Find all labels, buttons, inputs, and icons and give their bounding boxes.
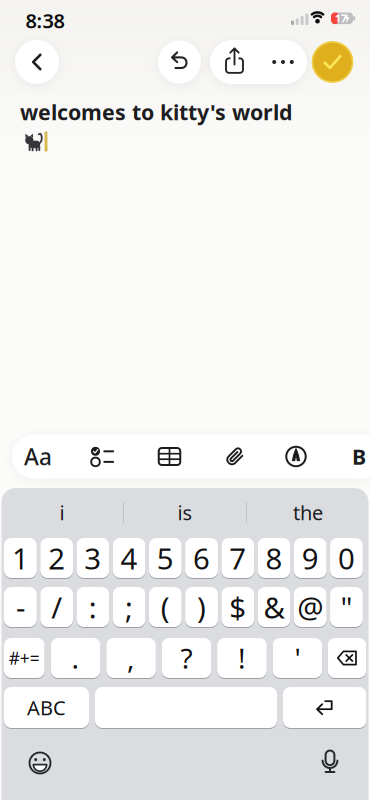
button[interactable]: Done [312,41,353,82]
staticText: ! [238,639,246,677]
staticText: 7 [229,538,246,577]
button[interactable]: 5 [149,538,182,578]
button[interactable]: ) [185,587,218,627]
staticText: 1 [12,538,29,577]
staticText: ABC [27,694,66,721]
button[interactable]: #+= [4,638,45,678]
staticText: 0 [338,538,355,577]
staticText: ) [197,587,206,626]
button[interactable]: Attach file [213,434,257,478]
button[interactable]: Delete [328,638,366,678]
button[interactable]: - [4,587,37,627]
staticText: " [340,587,352,626]
staticText: welcomes to kitty's world [20,98,292,126]
staticText: ? [180,639,192,677]
staticText: is [177,499,192,526]
button[interactable]: ABC [4,687,89,728]
staticText: 8 [265,538,282,577]
button[interactable]: ? [162,638,211,678]
button[interactable]: the [250,492,366,532]
button[interactable]: More [259,40,307,84]
staticText: - [16,587,25,626]
button[interactable]: Text format [14,434,62,478]
button[interactable]: ; [113,587,145,627]
staticText: i [59,499,64,526]
button[interactable]: Bold [337,434,370,478]
staticText: : [89,587,97,626]
button[interactable]: , [106,638,156,678]
staticText: 9 [302,538,319,577]
staticText: / [51,587,62,626]
staticText: & [263,587,284,626]
button[interactable]: ! [217,638,267,678]
staticText: 6 [193,538,210,577]
button[interactable]: : [76,587,109,627]
button[interactable]: 6 [185,538,218,578]
staticText: . [72,639,80,677]
button[interactable]: Dictation [308,741,352,785]
button[interactable]: Emoji [18,741,62,785]
button[interactable]: & [258,587,290,627]
button[interactable]: . [51,638,100,678]
staticText: 17 [335,11,347,25]
button[interactable]: space [95,687,277,728]
button[interactable]: Back [15,40,59,84]
button[interactable]: i [4,492,120,532]
button[interactable]: 3 [76,538,109,578]
button[interactable]: is [127,492,243,532]
staticText: the [293,499,323,526]
staticText: ( [161,587,170,626]
button[interactable]: 0 [330,538,363,578]
button[interactable]: Insert table [147,434,191,478]
button[interactable]: 7 [221,538,254,578]
staticText: ; [125,587,133,626]
staticText: $ [229,587,246,626]
button[interactable]: " [330,587,363,627]
button[interactable]: Undo [158,40,201,83]
staticText: 3 [84,538,101,577]
button[interactable]: Return [283,687,366,728]
button[interactable]: ( [149,587,182,627]
staticText: , [127,639,135,677]
button[interactable]: 8 [258,538,290,578]
button[interactable]: Share [210,40,258,84]
button[interactable]: Checklist [80,434,124,478]
staticText: #+= [9,646,40,669]
button[interactable]: $ [221,587,254,627]
staticText: ' [294,639,300,677]
staticText: 5 [157,538,174,577]
button[interactable]: ' [273,638,322,678]
staticText: @ [297,587,323,626]
staticText: 4 [121,538,138,577]
button[interactable]: 4 [113,538,145,578]
button[interactable]: @ [294,587,327,627]
button[interactable]: 1 [4,538,37,578]
button[interactable]: Draw [274,434,318,478]
staticText: 8:38 [25,7,64,34]
staticText: B [352,442,366,471]
button[interactable]: / [40,587,73,627]
button[interactable]: 2 [40,538,73,578]
staticText: 2 [48,538,65,577]
staticText: Aa [24,441,52,471]
button[interactable]: 9 [294,538,327,578]
